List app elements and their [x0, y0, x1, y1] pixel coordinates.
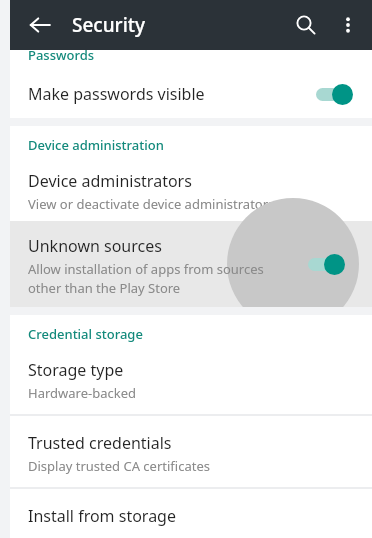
staticText: Device administration — [28, 136, 164, 154]
staticText: Display trusted CA certificates — [28, 457, 210, 475]
staticText: Make passwords visible — [28, 83, 205, 105]
staticText: Device administrators — [28, 170, 192, 192]
staticText: Storage type — [28, 359, 124, 381]
button[interactable]: More options — [328, 5, 368, 45]
button[interactable]: Search — [284, 3, 328, 47]
staticText: View or deactivate device administrators — [28, 195, 275, 213]
staticText: Trusted credentials — [28, 432, 172, 454]
staticText: Passwords — [28, 46, 95, 64]
button[interactable]: Storage type — [10, 353, 372, 404]
button[interactable]: Trusted credentials — [10, 426, 372, 477]
staticText: Allow installation of apps from sources — [28, 260, 264, 278]
button[interactable]: Back — [18, 3, 62, 47]
staticText: Security — [72, 12, 146, 38]
staticText: Install from storage — [28, 505, 176, 527]
staticText: Hardware-backed — [28, 384, 136, 402]
button[interactable]: Make passwords visible — [10, 74, 372, 114]
staticText: Unknown sources — [28, 235, 162, 257]
staticText: Credential storage — [28, 325, 143, 343]
staticText: other than the Play Store — [28, 279, 181, 297]
button[interactable]: Device administrators — [10, 164, 372, 215]
button[interactable]: Unknown sources — [10, 221, 372, 307]
